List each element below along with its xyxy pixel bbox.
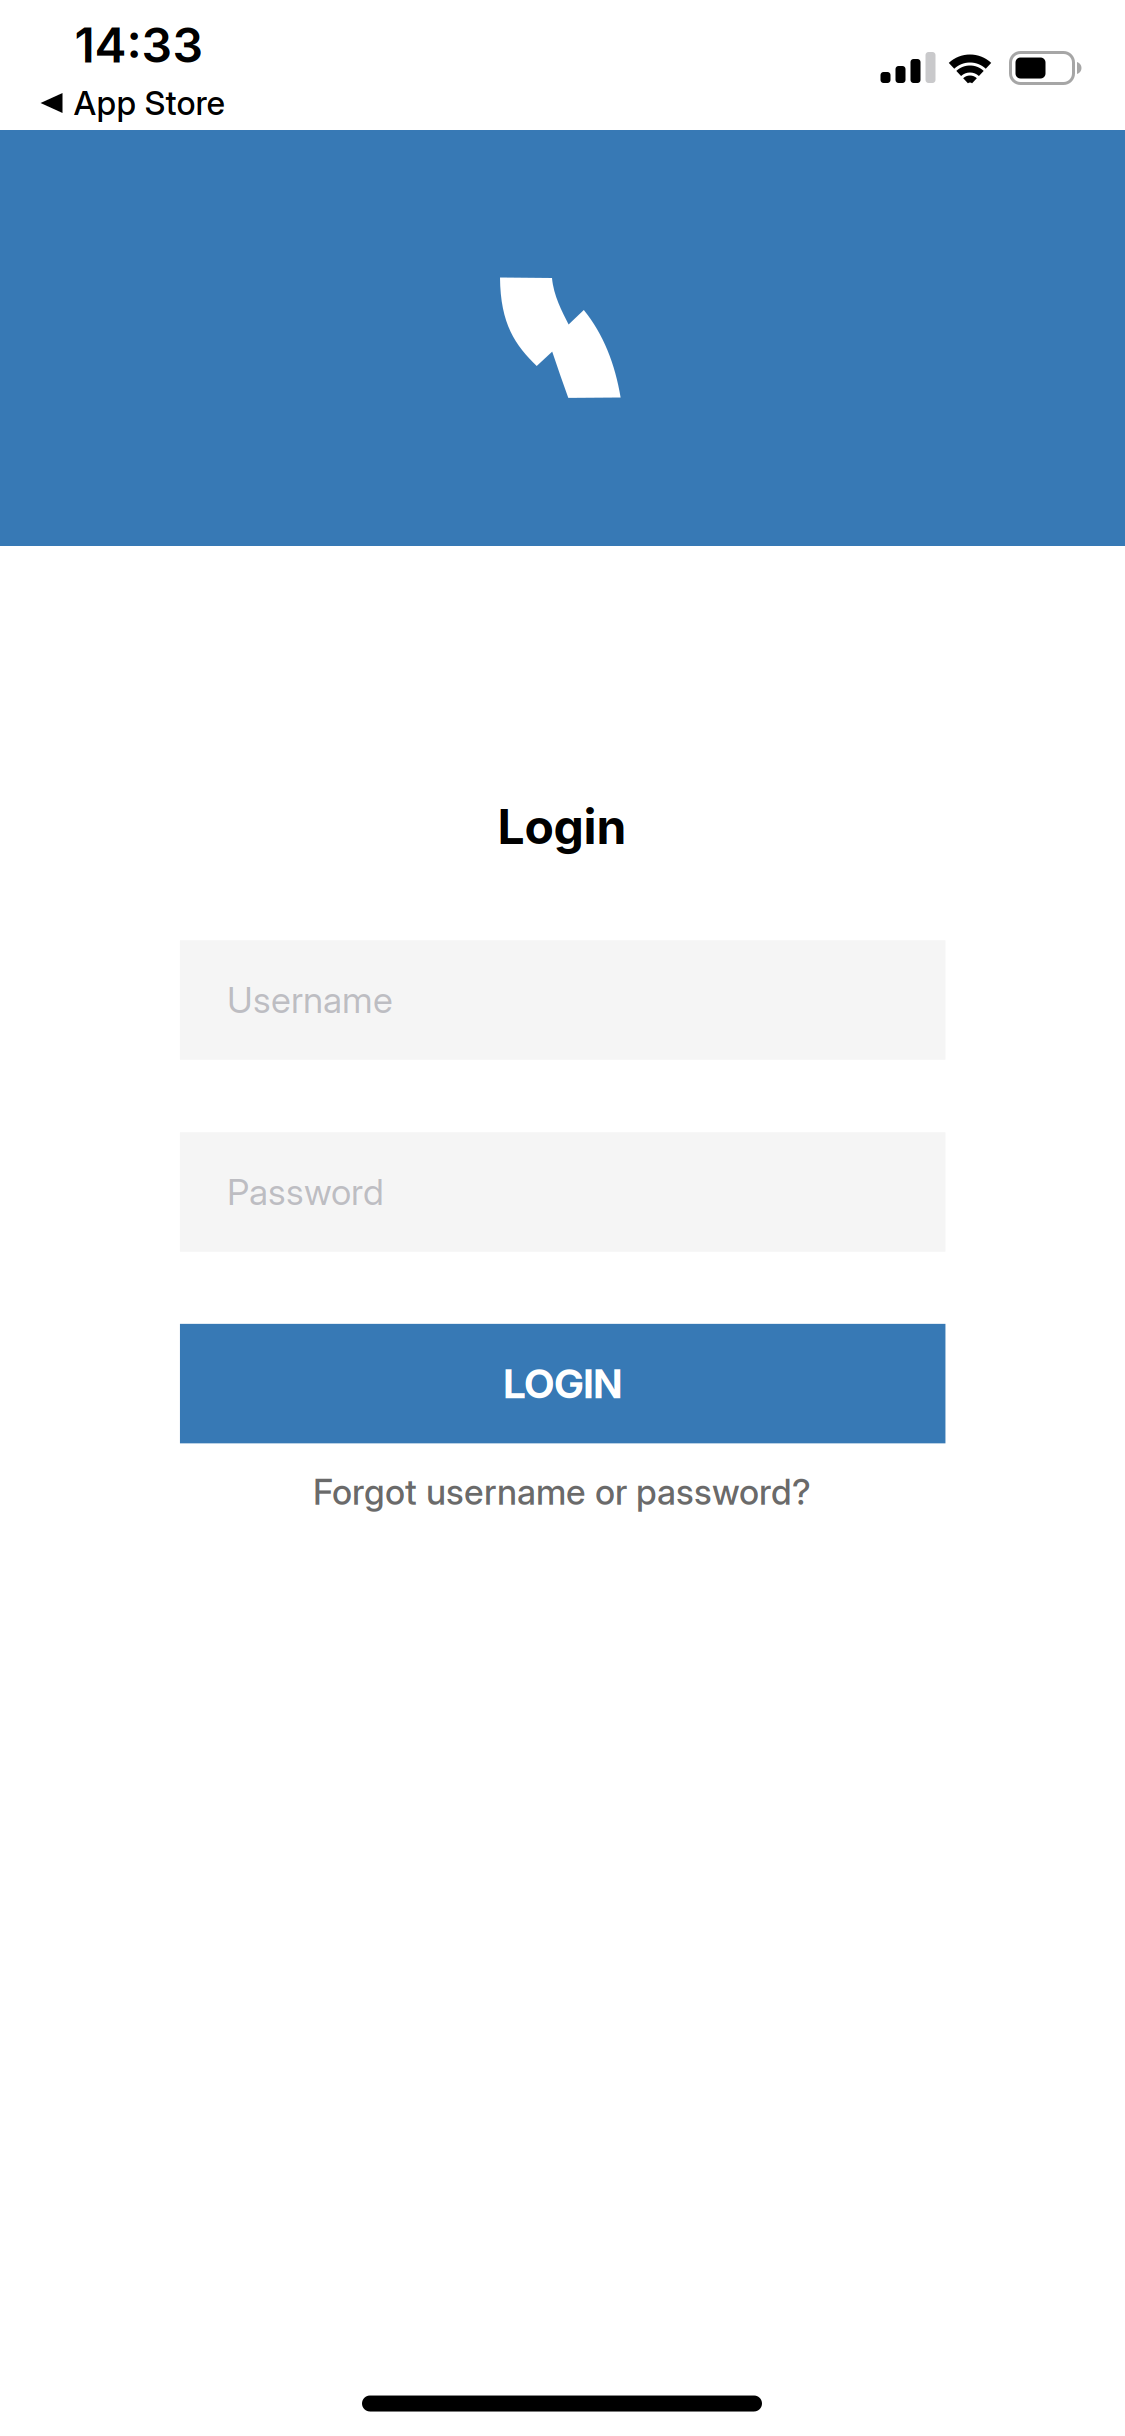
staticText: LOGIN (503, 1359, 622, 1408)
staticText: 14:33 (74, 16, 203, 74)
button[interactable]: Back to App Store (40, 83, 225, 123)
staticText: Password (227, 1170, 384, 1214)
staticText: Login (497, 797, 626, 856)
staticText: Username (227, 978, 393, 1022)
staticText: App Store (73, 83, 225, 123)
button[interactable]: Forgot username or password? (313, 1471, 811, 1513)
button[interactable]: LOGIN (180, 1324, 945, 1443)
staticText: Forgot username or password? (313, 1471, 811, 1513)
button[interactable]: Username (180, 940, 945, 1060)
button[interactable]: Password (180, 1132, 945, 1252)
